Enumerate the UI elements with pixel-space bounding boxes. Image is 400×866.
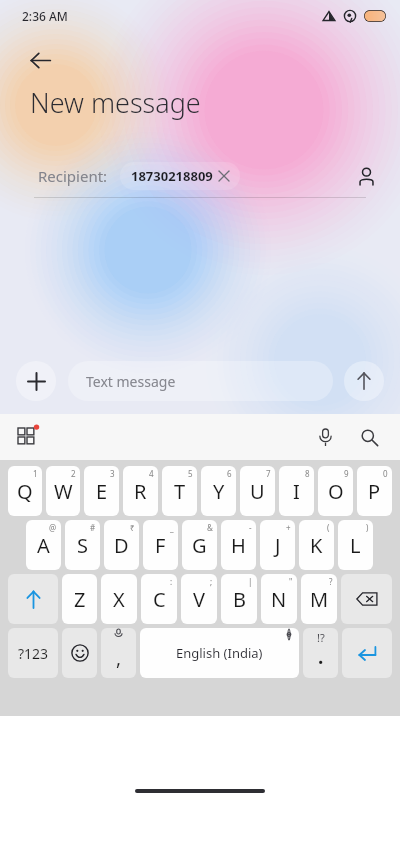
staticText: S bbox=[77, 532, 88, 559]
staticText: O bbox=[328, 478, 344, 505]
button[interactable]: Shift bbox=[8, 574, 58, 624]
staticText: G bbox=[192, 532, 207, 559]
button[interactable]: L bbox=[338, 520, 373, 570]
button[interactable]: S bbox=[65, 520, 100, 570]
button[interactable]: Voice input bbox=[308, 420, 342, 454]
button[interactable]: Send bbox=[344, 361, 384, 401]
staticText: , bbox=[116, 645, 122, 671]
staticText: !? bbox=[317, 630, 325, 645]
button[interactable]: H bbox=[221, 520, 256, 570]
button[interactable]: R bbox=[123, 466, 158, 516]
button[interactable]: F bbox=[143, 520, 178, 570]
button[interactable]: Contacts bbox=[346, 156, 386, 196]
staticText: C bbox=[153, 586, 166, 613]
staticText: 0 bbox=[383, 468, 388, 479]
button[interactable]: O bbox=[318, 466, 353, 516]
staticText: ?123 bbox=[18, 644, 49, 663]
staticText: ; bbox=[210, 576, 213, 587]
staticText: ) bbox=[366, 522, 369, 533]
staticText: T bbox=[174, 478, 186, 505]
staticText: N bbox=[271, 586, 287, 613]
staticText: : bbox=[170, 576, 173, 587]
staticText: 3 bbox=[110, 468, 115, 479]
button[interactable]: E bbox=[84, 466, 119, 516]
staticText: New message bbox=[30, 84, 201, 121]
button[interactable]: U bbox=[240, 466, 275, 516]
button[interactable]: W bbox=[46, 466, 80, 516]
staticText: R bbox=[134, 478, 147, 505]
button[interactable]: Comma bbox=[101, 628, 136, 678]
button[interactable]: Backspace bbox=[341, 574, 392, 624]
button[interactable]: X bbox=[101, 574, 137, 624]
staticText: I bbox=[293, 478, 300, 505]
button[interactable]: Emoji bbox=[62, 628, 97, 678]
staticText: B bbox=[233, 586, 246, 613]
staticText: & bbox=[207, 522, 213, 533]
button[interactable]: C bbox=[141, 574, 177, 624]
button[interactable]: J bbox=[260, 520, 295, 570]
staticText: . bbox=[318, 644, 324, 670]
staticText: Q bbox=[17, 478, 33, 505]
staticText: Y bbox=[213, 478, 225, 505]
button[interactable]: Back bbox=[18, 38, 62, 82]
staticText: H bbox=[231, 532, 246, 559]
button[interactable]: B bbox=[221, 574, 257, 624]
button[interactable]: 18730218809 bbox=[120, 162, 240, 190]
staticText: A bbox=[37, 532, 50, 559]
button[interactable]: Z bbox=[62, 574, 97, 624]
staticText: J bbox=[275, 532, 281, 559]
button[interactable]: Y bbox=[201, 466, 236, 516]
staticText: W bbox=[54, 478, 73, 505]
button[interactable]: K bbox=[299, 520, 334, 570]
staticText: L bbox=[350, 532, 361, 559]
button[interactable]: Period bbox=[303, 628, 338, 678]
button[interactable]: N bbox=[261, 574, 297, 624]
staticText: Recipient: bbox=[38, 166, 108, 186]
staticText: 7 bbox=[266, 468, 271, 479]
staticText: - bbox=[249, 522, 252, 533]
button[interactable]: T bbox=[162, 466, 197, 516]
staticText: 6 bbox=[227, 468, 232, 479]
staticText: M bbox=[310, 586, 329, 613]
button[interactable]: English (India) bbox=[140, 628, 299, 678]
staticText: 8 bbox=[305, 468, 310, 479]
button[interactable]: M bbox=[301, 574, 337, 624]
staticText: English (India) bbox=[176, 644, 263, 662]
button[interactable]: Search bbox=[352, 420, 386, 454]
staticText: P bbox=[368, 478, 381, 505]
staticText: ( bbox=[327, 522, 330, 533]
staticText: 4 bbox=[149, 468, 154, 479]
button[interactable]: A bbox=[26, 520, 61, 570]
button[interactable]: P bbox=[357, 466, 392, 516]
button[interactable]: Toolbox bbox=[10, 420, 44, 454]
staticText: K bbox=[310, 532, 323, 559]
staticText: 2 bbox=[71, 468, 76, 479]
staticText: # bbox=[90, 522, 96, 533]
button[interactable]: Add attachment bbox=[16, 361, 56, 401]
button[interactable]: I bbox=[279, 466, 314, 516]
staticText: @ bbox=[49, 522, 57, 533]
button[interactable]: V bbox=[181, 574, 217, 624]
staticText: D bbox=[114, 532, 129, 559]
button[interactable]: ?123 bbox=[8, 628, 58, 678]
staticText: ₹ bbox=[130, 522, 135, 533]
staticText: " bbox=[289, 576, 293, 587]
button[interactable]: Text message bbox=[68, 361, 333, 401]
button[interactable]: Q bbox=[8, 466, 42, 516]
staticText: X bbox=[113, 586, 125, 613]
staticText: _ bbox=[170, 522, 174, 533]
staticText: Text message bbox=[86, 372, 176, 391]
staticText: 18730218809 bbox=[131, 167, 213, 185]
staticText: 1 bbox=[33, 468, 38, 479]
button[interactable]: Enter bbox=[342, 628, 392, 678]
staticText: V bbox=[193, 586, 205, 613]
staticText: 2:36 AM bbox=[22, 8, 68, 24]
staticText: 9 bbox=[344, 468, 349, 479]
button[interactable]: D bbox=[104, 520, 139, 570]
staticText: | bbox=[248, 576, 253, 587]
staticText: Z bbox=[74, 586, 86, 613]
staticText: F bbox=[155, 532, 166, 559]
button[interactable]: G bbox=[182, 520, 217, 570]
staticText: 5 bbox=[188, 468, 193, 479]
staticText: U bbox=[250, 478, 265, 505]
